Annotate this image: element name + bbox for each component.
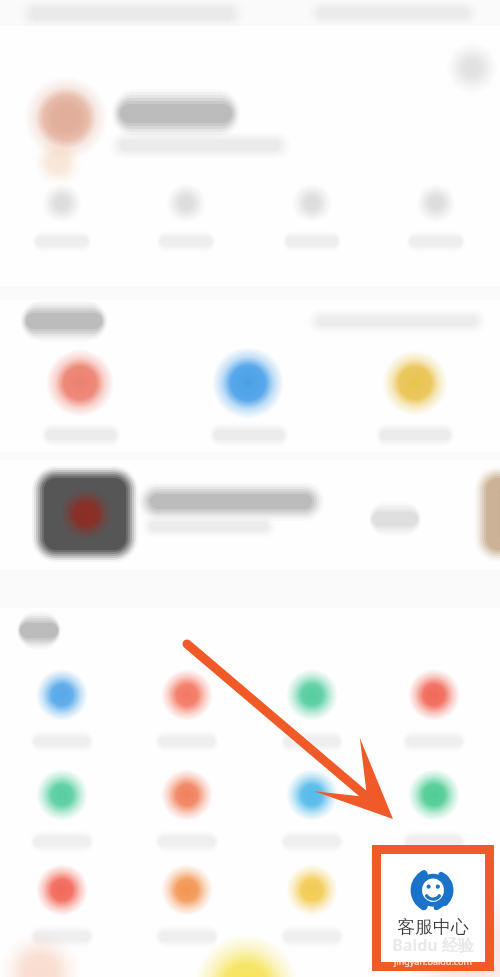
button[interactable]: 客服中心 Customer Service Center: [372, 845, 494, 971]
staticText: 客服中心: [381, 916, 485, 944]
staticText: Baidu 经验: [381, 934, 485, 956]
button[interactable]: Profile: [20, 75, 320, 165]
button[interactable]: Settings: [448, 44, 496, 92]
staticText: jingyan.baidu.com: [381, 955, 485, 969]
